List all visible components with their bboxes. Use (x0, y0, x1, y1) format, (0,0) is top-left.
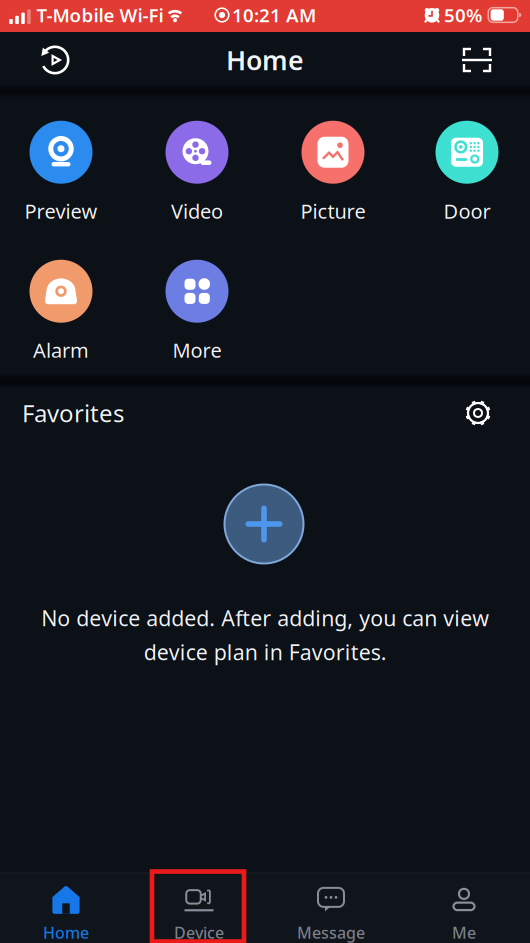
staticText: Device (174, 922, 224, 943)
staticText: Alarm (33, 337, 89, 363)
button[interactable]: Me (409, 885, 519, 943)
button[interactable]: Door (417, 121, 517, 224)
button[interactable]: Preview (11, 121, 111, 224)
staticText: Door (443, 198, 490, 224)
staticText: 10:21 AM (232, 3, 316, 27)
staticText: More (172, 337, 221, 363)
button[interactable]: Playback (38, 43, 72, 77)
button[interactable]: Picture (283, 121, 383, 224)
staticText: 50% (444, 3, 482, 27)
staticText: T-Mobile Wi-Fi (36, 3, 163, 27)
staticText: Home (43, 922, 89, 943)
button[interactable]: Device (144, 885, 254, 943)
staticText: Home (226, 42, 304, 78)
staticText: Favorites (22, 397, 124, 429)
staticText: No device added. After adding, you can v… (41, 604, 489, 666)
staticText: Picture (300, 198, 365, 224)
button[interactable]: Favorites settings (464, 399, 492, 427)
button[interactable]: Home (11, 885, 121, 943)
button[interactable]: More (147, 260, 247, 363)
button[interactable]: Scan QR code (462, 45, 492, 75)
button[interactable]: Add device (222, 482, 305, 565)
button[interactable]: Video (147, 121, 247, 224)
button[interactable]: Alarm (11, 260, 111, 363)
staticText: Preview (24, 198, 97, 224)
staticText: Video (171, 198, 223, 224)
button[interactable]: Message (276, 885, 386, 943)
staticText: Me (452, 922, 476, 943)
staticText: Message (297, 922, 365, 943)
